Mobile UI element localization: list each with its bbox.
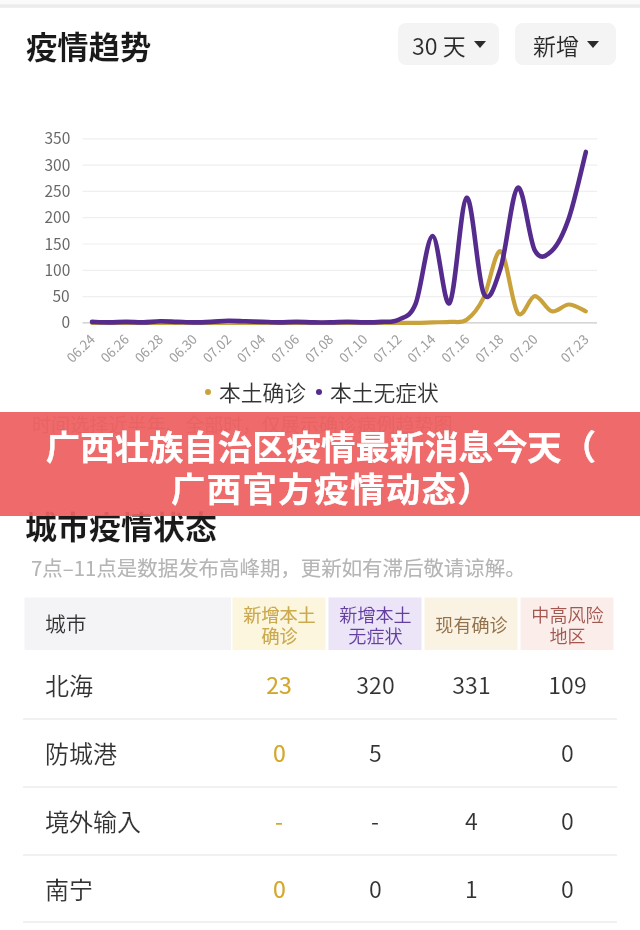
staticText: 南宁 xyxy=(45,871,93,906)
staticText: - xyxy=(371,803,379,836)
button[interactable]: 新增 xyxy=(515,23,616,65)
staticText: 0 xyxy=(561,803,574,836)
staticText: 时间选择近半年、全部时，仅展示确诊病例趋势图 xyxy=(32,410,453,438)
staticText: 城市 xyxy=(45,608,87,638)
staticText: 30 天 xyxy=(412,28,466,61)
button[interactable]: 境外输入 xyxy=(24,787,613,855)
staticText: 109 xyxy=(548,667,587,700)
staticText: 320 xyxy=(356,667,395,700)
staticText: 北海 xyxy=(45,667,93,702)
staticText: 1 xyxy=(465,871,478,904)
staticText: 本土无症状 xyxy=(330,376,439,406)
staticText: 0 xyxy=(273,735,286,768)
staticText: 中高风险 地区 xyxy=(531,601,604,648)
staticText: 新增本土 无症状 xyxy=(339,601,412,648)
button[interactable]: 30 天 xyxy=(398,23,499,65)
staticText: 境外输入 xyxy=(45,803,141,838)
staticText: - xyxy=(275,803,283,836)
staticText: 广西官方疫情动态） xyxy=(12,462,640,512)
button[interactable]: 南宁 xyxy=(24,855,613,922)
button[interactable]: 北海 xyxy=(24,650,613,719)
button[interactable]: 防城港 xyxy=(24,719,613,787)
staticText: 5 xyxy=(369,735,382,768)
staticText: 本土确诊 xyxy=(219,376,306,406)
staticText: 0 xyxy=(561,735,574,768)
staticText: 疫情趋势 xyxy=(26,23,152,68)
staticText: 331 xyxy=(452,667,491,700)
staticText: 新增 xyxy=(533,28,579,61)
staticText: 4 xyxy=(465,803,478,836)
staticText: 城市疫情状态 xyxy=(25,502,218,544)
staticText: 0 xyxy=(561,871,574,904)
staticText: 23 xyxy=(266,667,292,700)
staticText: 0 xyxy=(369,871,382,904)
staticText: 防城港 xyxy=(45,735,117,770)
staticText: 广西壮族自治区疫情最新消息今天（ xyxy=(1,420,640,470)
staticText: 新增本土 确诊 xyxy=(243,601,316,648)
staticText: 0 xyxy=(273,871,286,904)
staticText: 7点–11点是数据发布高峰期，更新如有滞后敬请谅解。 xyxy=(31,552,526,582)
staticText: 现有确诊 xyxy=(435,611,508,637)
